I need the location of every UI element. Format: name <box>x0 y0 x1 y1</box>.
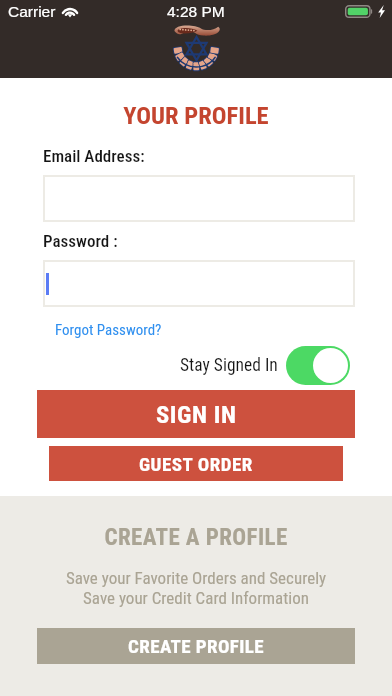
staticText: CREATE A PROFILE <box>0 524 392 551</box>
staticText: GUEST ORDER <box>139 453 253 475</box>
button[interactable] <box>43 260 355 307</box>
staticText: 4:28 PM <box>167 3 225 20</box>
staticText: Forgot Password? <box>55 321 162 339</box>
staticText: YOUR PROFILE <box>0 101 392 130</box>
button[interactable]: Stay Signed In toggle <box>286 346 350 385</box>
staticText: CREATE PROFILE <box>128 635 264 657</box>
button[interactable] <box>43 175 355 222</box>
staticText: Password : <box>43 231 118 251</box>
staticText: SIGN IN <box>156 400 237 429</box>
staticText: Stay Signed In <box>180 355 278 376</box>
button[interactable]: Forgot Password? <box>55 321 162 339</box>
button[interactable]: GUEST ORDER <box>49 446 343 481</box>
button[interactable]: SIGN IN <box>37 390 355 438</box>
other: Ben Yehuda logo <box>168 23 224 73</box>
staticText: Email Address: <box>43 146 145 166</box>
staticText: Save your Favorite Orders and Securely S… <box>0 568 392 608</box>
staticText: Carrier <box>8 3 56 20</box>
button[interactable]: CREATE PROFILE <box>37 628 355 664</box>
